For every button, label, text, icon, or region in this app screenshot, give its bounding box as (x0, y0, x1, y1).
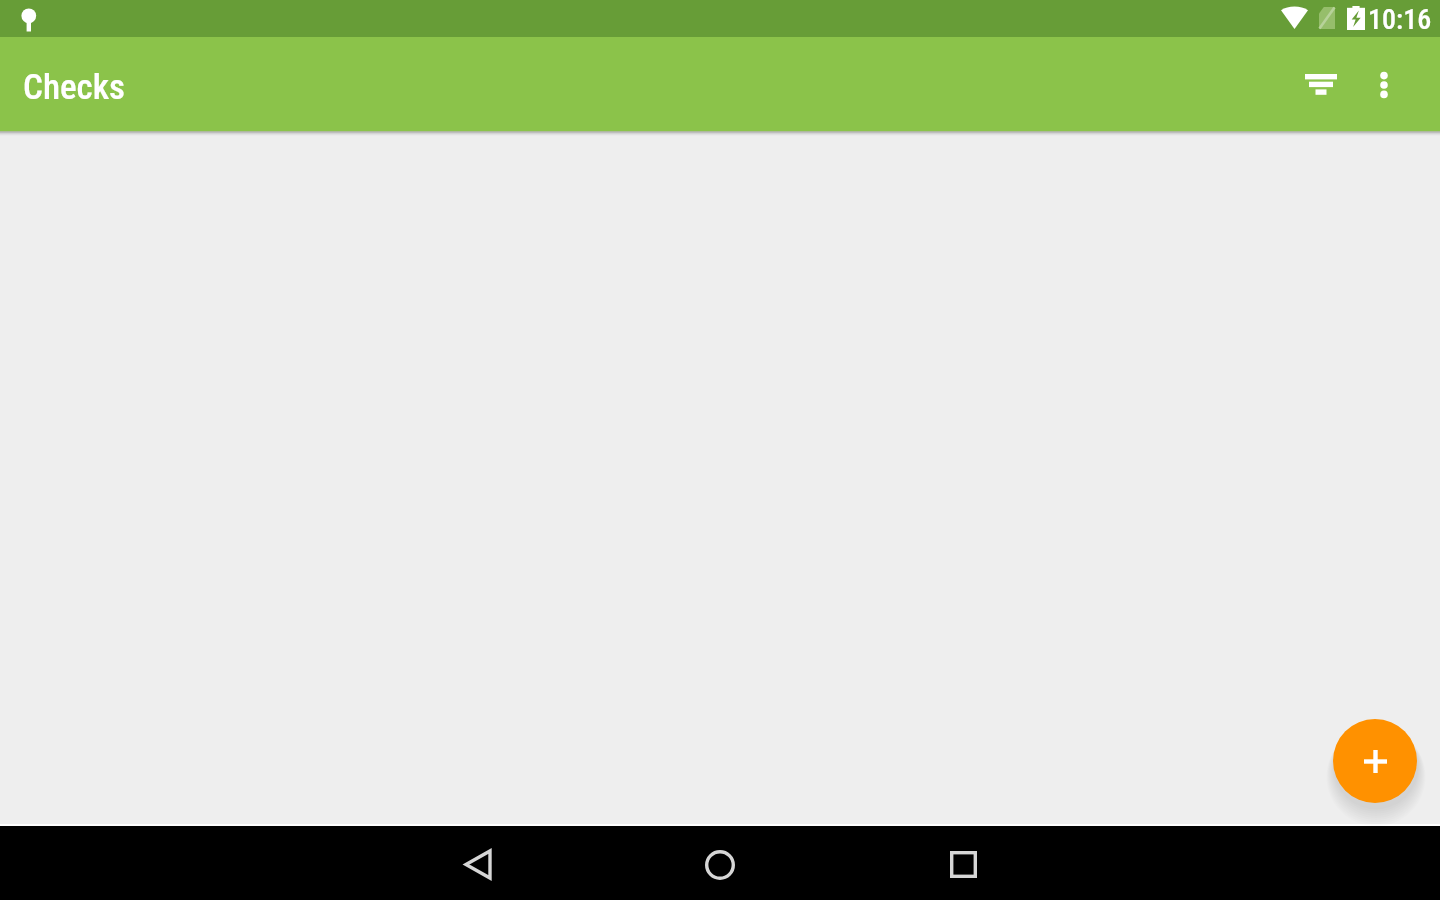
button[interactable]: Add (1333, 719, 1417, 803)
button[interactable]: Filter (1289, 53, 1353, 117)
button[interactable]: Back (448, 834, 508, 894)
staticText: Checks (23, 67, 125, 108)
button[interactable]: More options (1352, 53, 1416, 117)
staticText: 10:16 (1368, 3, 1432, 36)
button[interactable]: Home (690, 835, 750, 895)
button[interactable]: Recent apps (933, 834, 993, 894)
